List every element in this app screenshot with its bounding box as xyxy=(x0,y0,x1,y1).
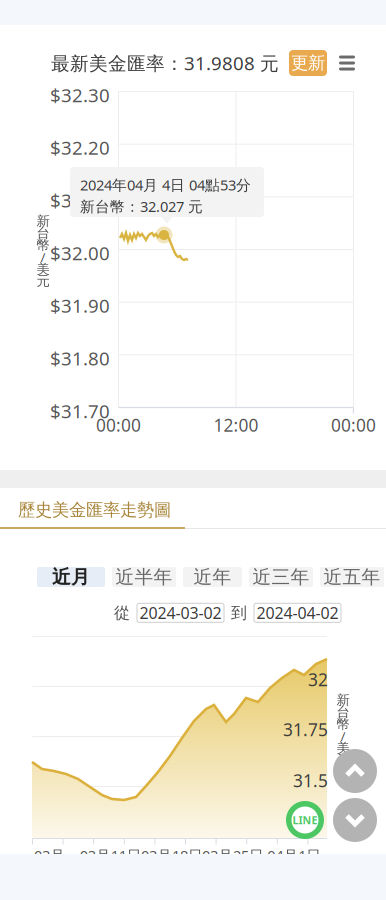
staticText: 04月1日 xyxy=(267,845,321,865)
staticText: $31.90 xyxy=(50,293,110,318)
staticText: 幣 xyxy=(336,716,349,732)
staticText: $32.30 xyxy=(50,82,110,107)
staticText: $32.00 xyxy=(50,240,110,265)
staticText: 更新 xyxy=(291,52,325,74)
staticText: 幣 xyxy=(36,237,49,253)
staticText: 美 xyxy=(36,261,49,277)
staticText: 新台幣：32.027 元 xyxy=(80,196,203,216)
staticText: 元 xyxy=(336,752,349,768)
staticText: 03月11日 xyxy=(80,845,142,865)
staticText: 00:00 xyxy=(96,413,141,436)
button[interactable]: 歷史美金匯率走勢圖 xyxy=(18,492,204,528)
staticText: $32.20 xyxy=(50,135,110,160)
button[interactable]: 更新 xyxy=(289,50,327,76)
staticText: LINE xyxy=(292,813,317,827)
staticText: / xyxy=(340,727,345,745)
staticText: 從 xyxy=(114,603,130,623)
button[interactable]: Scroll up xyxy=(333,749,377,793)
staticText: 31.75 xyxy=(283,718,328,741)
staticText: 台 xyxy=(336,704,349,720)
staticText: / xyxy=(40,248,45,266)
staticText: $31.80 xyxy=(50,346,110,371)
staticText: 歷史美金匯率走勢圖 xyxy=(18,499,171,521)
staticText: 美 xyxy=(336,740,349,756)
staticText: 近年 xyxy=(193,565,231,588)
staticText: 近三年 xyxy=(252,565,309,588)
button[interactable]: 近年 xyxy=(183,567,242,587)
button[interactable]: Share on LINE xyxy=(286,801,324,839)
button[interactable]: Menu xyxy=(337,51,357,75)
staticText: 元 xyxy=(36,273,49,289)
staticText: 03月18日 xyxy=(141,845,203,865)
staticText: 近半年 xyxy=(115,565,172,588)
staticText: 到 xyxy=(231,603,247,623)
staticText: 03月 xyxy=(34,845,65,865)
staticText: 新 xyxy=(336,692,349,708)
button[interactable]: 2024-04-02 xyxy=(254,603,341,622)
staticText: 最新美金匯率：31.9808 元 xyxy=(51,51,279,75)
staticText: 近月 xyxy=(52,565,90,588)
staticText: 03月25日 xyxy=(202,845,264,865)
staticText: 2024-03-02 xyxy=(139,602,221,623)
staticText: 2024-04-02 xyxy=(256,602,338,623)
staticText: $31.70 xyxy=(50,398,110,423)
staticText: 00:00 xyxy=(331,413,376,436)
staticText: 32 xyxy=(308,668,328,691)
staticText: 12:00 xyxy=(213,413,258,436)
button[interactable]: Scroll down xyxy=(333,798,377,842)
button[interactable]: 近五年 xyxy=(320,567,384,587)
button[interactable]: 2024-03-02 xyxy=(137,603,224,622)
staticText: $32.10 xyxy=(50,188,110,213)
staticText: 新 xyxy=(36,213,49,229)
button[interactable]: 近三年 xyxy=(249,567,313,587)
button[interactable]: 近半年 xyxy=(112,567,176,587)
staticText: 近五年 xyxy=(323,565,380,588)
staticText: 2024年04月 4日 04點53分 xyxy=(80,175,251,194)
staticText: 台 xyxy=(36,225,49,241)
button[interactable]: 近月 xyxy=(37,567,105,587)
staticText: 31.5 xyxy=(293,769,328,792)
